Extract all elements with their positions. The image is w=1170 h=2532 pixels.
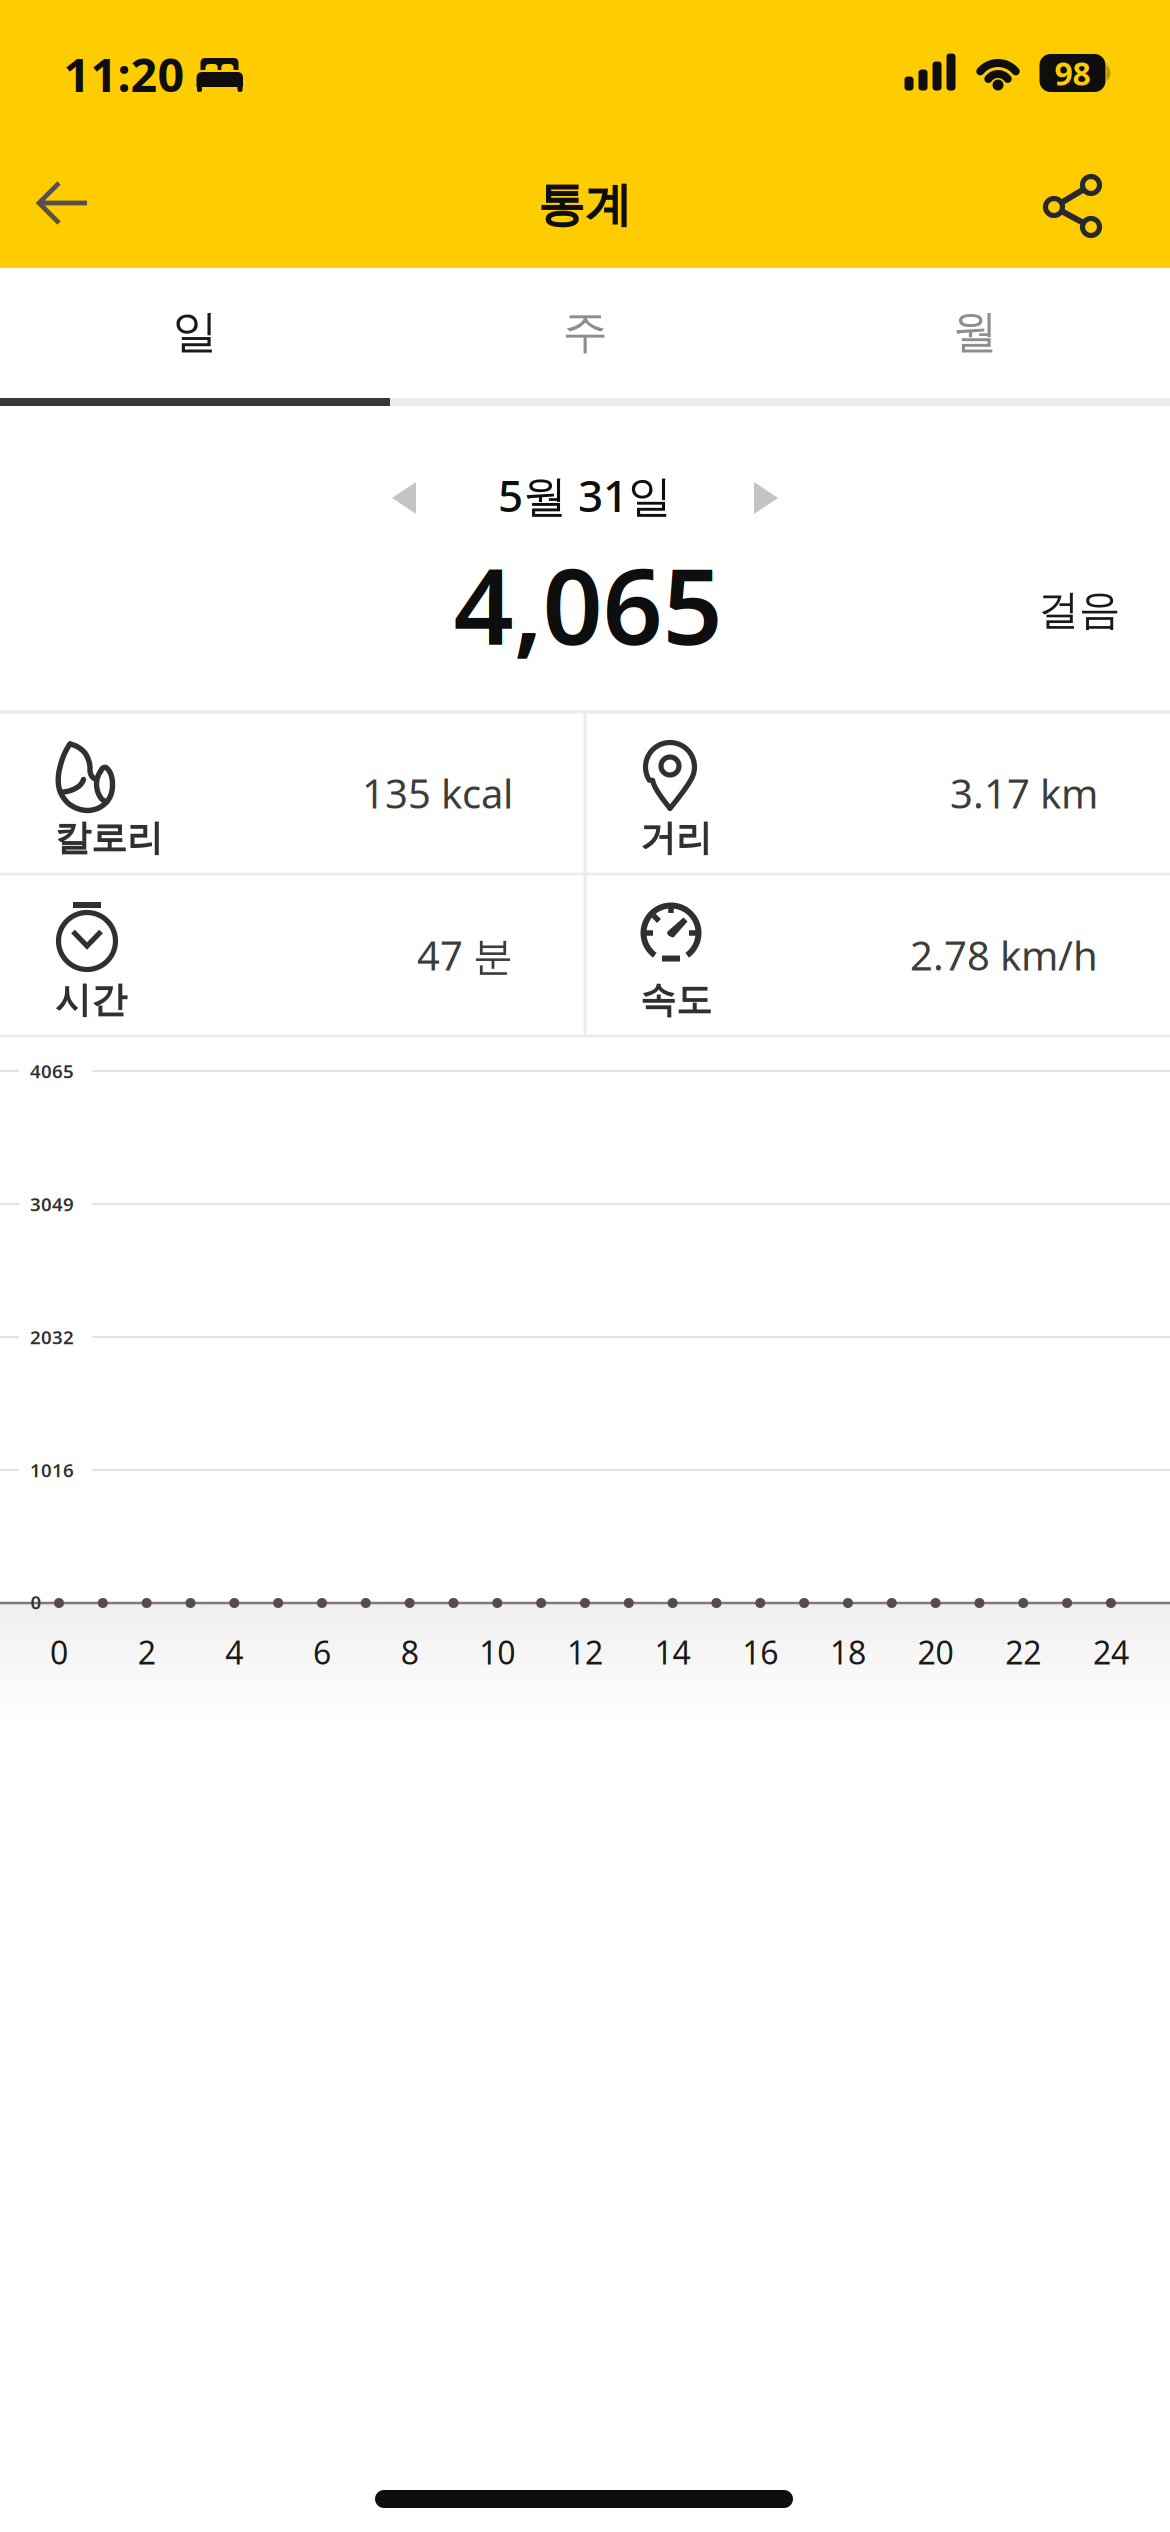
staticText: 걸음 [1038,585,1120,635]
button[interactable]: Previous day [374,468,434,528]
staticText: 4 [225,1631,243,1673]
staticText: 14 [655,1631,691,1673]
staticText: 6 [313,1631,331,1673]
staticText: 98 [1054,52,1090,94]
staticText: 일 [172,304,217,360]
staticText: 11:20 [63,43,184,105]
staticText: 0 [30,1590,41,1614]
staticText: 10 [479,1631,515,1673]
staticText: 47 분 [417,928,513,981]
staticText: 2 [138,1631,156,1673]
staticText: 주 [562,304,607,360]
staticText: 2032 [30,1325,74,1349]
staticText: 12 [567,1631,603,1673]
button[interactable]: 일 [0,268,390,396]
staticText: 5월 31일 [498,466,672,524]
staticText: 1016 [30,1458,74,1482]
staticText: 8 [401,1631,419,1673]
staticText: 3049 [30,1192,74,1216]
staticText: 4,065 [453,534,722,674]
staticText: 16 [742,1631,778,1673]
staticText: 4065 [30,1059,74,1083]
staticText: 135 kcal [362,766,513,819]
staticText: 통계 [538,176,632,234]
staticText: 22 [1005,1631,1041,1673]
staticText: 월 [952,304,997,360]
staticText: 18 [830,1631,866,1673]
button[interactable]: 주 [390,268,780,396]
staticText: 속도 [640,978,712,1022]
staticText: 칼로리 [55,816,163,860]
button[interactable]: Next day [736,468,796,528]
staticText: 2.78 km/h [910,928,1098,981]
button[interactable]: Share [1023,161,1123,251]
staticText: 3.17 km [950,766,1098,819]
staticText: 24 [1093,1631,1129,1673]
staticText: 시간 [55,978,127,1022]
staticText: 거리 [640,816,712,860]
staticText: 20 [918,1631,954,1673]
button[interactable]: Back [13,158,113,248]
button[interactable]: 월 [780,268,1170,396]
staticText: 0 [50,1631,68,1673]
